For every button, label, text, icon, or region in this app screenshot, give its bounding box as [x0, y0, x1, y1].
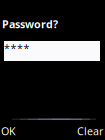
- staticText: OK: [1, 124, 16, 138]
- staticText: ****: [4, 41, 29, 55]
- button[interactable]: OK: [1, 123, 52, 139]
- button[interactable]: Clear: [52, 123, 103, 139]
- button[interactable]: Password field: [4, 41, 100, 61]
- staticText: Clear: [77, 124, 103, 138]
- staticText: Password?: [2, 17, 58, 31]
